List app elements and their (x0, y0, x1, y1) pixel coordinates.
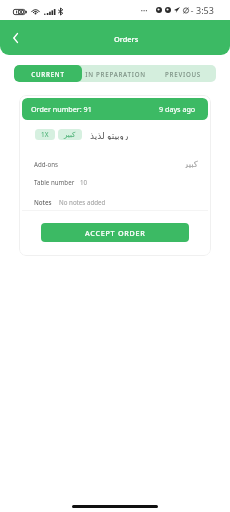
staticText: ـ (191, 6, 194, 14)
staticText: 9 days ago (159, 104, 196, 114)
staticText: كبير (64, 131, 76, 139)
staticText: Add-ons (34, 160, 59, 168)
staticText: ACCEPT ORDER (85, 228, 146, 238)
staticText: 3:53 (196, 4, 214, 16)
staticText: Order number: 91 (31, 104, 92, 114)
staticText: Orders (114, 34, 139, 44)
staticText: PREVIOUS (165, 70, 201, 78)
staticText: No notes added (59, 198, 106, 206)
staticText: CURRENT (31, 70, 65, 78)
button[interactable]: CURRENT (14, 65, 82, 82)
button[interactable]: ACCEPT ORDER (41, 223, 189, 242)
staticText: Table number (34, 178, 75, 186)
staticText: IN PREPARATION (85, 70, 146, 78)
button[interactable]: IN PREPARATION (82, 65, 149, 82)
staticText: كبير (184, 159, 198, 168)
staticText: 10 (80, 178, 88, 186)
staticText: 1X (41, 130, 49, 139)
staticText: روبيتو لذيذ (90, 129, 129, 140)
button[interactable]: PREVIOUS (149, 65, 216, 82)
button[interactable]: Back (0, 23, 30, 53)
staticText: Notes (34, 198, 52, 206)
